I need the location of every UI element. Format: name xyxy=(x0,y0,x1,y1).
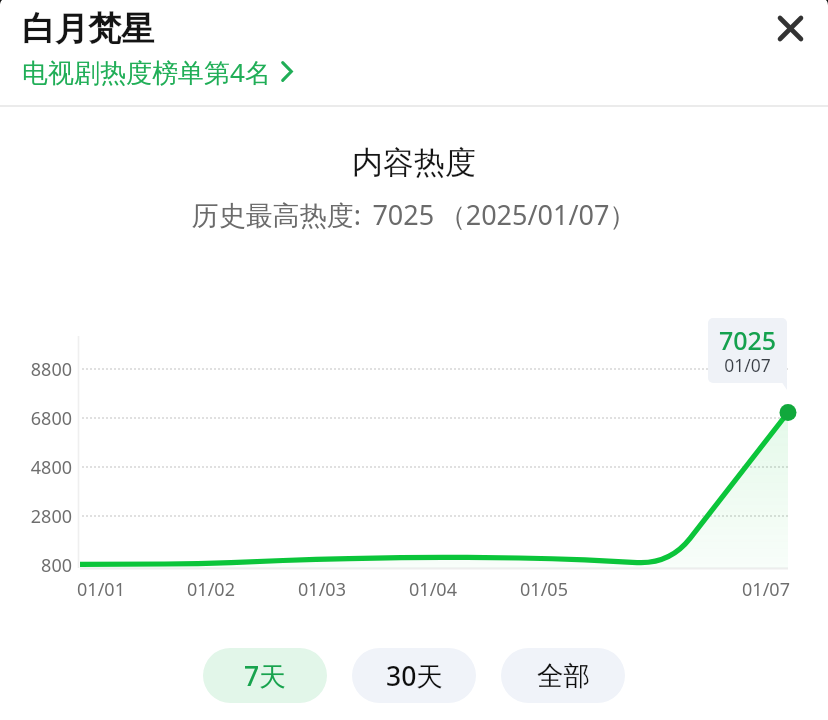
staticText: 7025 xyxy=(708,323,787,357)
staticText: 全部 xyxy=(537,659,590,692)
staticText: 6800 xyxy=(0,406,72,431)
staticText: 01/05 xyxy=(484,577,604,602)
staticText: 30天 xyxy=(386,658,443,694)
button[interactable]: 全部 xyxy=(501,648,625,703)
staticText: 白月梵星 xyxy=(22,8,154,50)
staticText: 8800 xyxy=(0,357,72,382)
button[interactable]: 30天 xyxy=(352,648,476,703)
staticText: 7天 xyxy=(244,658,286,694)
button[interactable]: Close xyxy=(766,4,814,52)
staticText: 电视剧热度榜单第4名 xyxy=(22,54,271,88)
staticText: 历史最高热度: 7025 （2025/01/07） xyxy=(0,196,828,233)
staticText: 01/01 xyxy=(41,577,161,602)
staticText: 01/03 xyxy=(262,577,382,602)
staticText: 内容热度 xyxy=(0,143,828,182)
staticText: 01/02 xyxy=(151,577,271,602)
staticText: 4800 xyxy=(0,455,72,480)
staticText: 800 xyxy=(0,553,72,578)
button[interactable]: 7天 xyxy=(203,648,327,703)
staticText: 01/07 xyxy=(708,353,787,377)
button[interactable]: 电视剧热度榜单第4名 xyxy=(22,54,293,88)
staticText: 01/04 xyxy=(373,577,493,602)
staticText: 01/07 xyxy=(706,577,826,602)
staticText: 2800 xyxy=(0,504,72,529)
